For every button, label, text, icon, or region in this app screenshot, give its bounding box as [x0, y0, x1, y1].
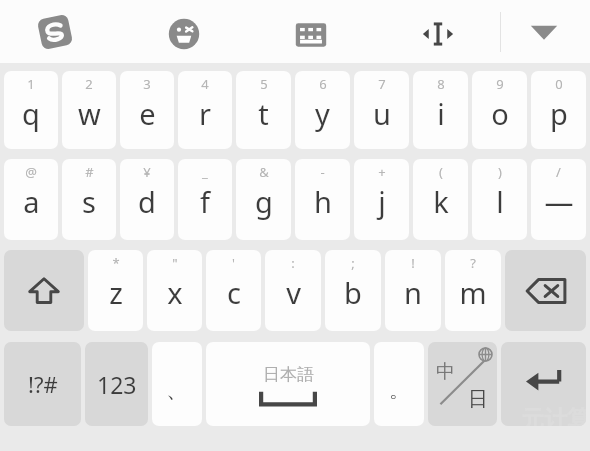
staticText: k	[433, 182, 449, 221]
button[interactable]: /	[531, 159, 586, 240]
button[interactable]: :	[265, 250, 321, 331]
staticText: m	[459, 273, 487, 312]
button[interactable]: Move cursor	[417, 13, 459, 55]
staticText: g	[255, 182, 273, 221]
staticText: 、	[166, 376, 188, 404]
staticText: h	[314, 182, 332, 221]
staticText: 7	[378, 75, 386, 93]
staticText: j	[378, 182, 386, 221]
button[interactable]: _	[178, 159, 232, 240]
staticText: /	[556, 163, 561, 181]
button[interactable]: ?	[445, 250, 501, 331]
staticText: !	[411, 254, 415, 272]
button[interactable]: 3	[120, 71, 174, 149]
button[interactable]: (	[413, 159, 468, 240]
button[interactable]: 4	[178, 71, 232, 149]
staticText: r	[199, 94, 211, 133]
button[interactable]: '	[206, 250, 261, 331]
staticText: c	[227, 273, 241, 312]
button[interactable]: !?#	[4, 342, 81, 426]
staticText: a	[23, 182, 40, 221]
staticText: :	[291, 254, 295, 272]
button[interactable]: 2	[62, 71, 116, 149]
staticText: *	[112, 254, 120, 272]
staticText: s	[82, 182, 96, 221]
staticText: y	[315, 94, 330, 133]
button[interactable]: +	[354, 159, 409, 240]
staticText: 123	[97, 369, 137, 400]
staticText: b	[344, 273, 362, 312]
staticText: l	[496, 182, 504, 221]
staticText: @	[25, 163, 37, 181]
staticText: x	[167, 273, 183, 312]
button[interactable]: #	[62, 159, 116, 240]
staticText: 6	[319, 75, 327, 93]
staticText: p	[550, 94, 568, 133]
staticText: 1	[27, 75, 35, 93]
staticText: i	[437, 94, 445, 133]
button[interactable]: -	[295, 159, 350, 240]
staticText: ?	[470, 254, 476, 272]
button[interactable]: 、	[152, 342, 202, 426]
staticText: n	[404, 273, 422, 312]
staticText: w	[78, 94, 101, 133]
button[interactable]: *	[88, 250, 143, 331]
staticText: 3	[143, 75, 151, 93]
staticText: #	[85, 163, 94, 181]
button[interactable]: &	[236, 159, 291, 240]
button[interactable]: Keyboard layout	[292, 16, 330, 54]
staticText: )	[498, 163, 502, 181]
button[interactable]: 5	[236, 71, 291, 149]
button[interactable]: Hide keyboard	[524, 18, 564, 46]
button[interactable]: 6	[295, 71, 350, 149]
staticText: 日	[468, 387, 488, 412]
staticText: e	[139, 94, 156, 133]
staticText: u	[373, 94, 391, 133]
button[interactable]: !	[385, 250, 441, 331]
staticText: -	[320, 163, 325, 181]
staticText: t	[258, 94, 269, 133]
staticText: _	[202, 163, 208, 181]
staticText: 8	[437, 75, 445, 93]
button[interactable]: 1	[4, 71, 58, 149]
button[interactable]: Emoji	[164, 14, 204, 54]
staticText: 。	[389, 378, 409, 403]
button[interactable]: Backspace	[505, 250, 586, 331]
staticText: ¥	[143, 163, 151, 181]
button[interactable]: 9	[472, 71, 527, 149]
staticText: 2	[85, 75, 93, 93]
staticText: 5	[260, 75, 268, 93]
staticText: d	[138, 182, 156, 221]
button[interactable]: 0	[531, 71, 586, 149]
button[interactable]: @	[4, 159, 58, 240]
button[interactable]: Shift	[4, 250, 84, 331]
button[interactable]: Switch language Chinese Japanese	[428, 342, 497, 426]
button[interactable]: Enter	[501, 342, 586, 426]
button[interactable]: Sogou input settings	[33, 10, 77, 54]
staticText: 4	[201, 75, 209, 93]
staticText: !?#	[28, 369, 58, 399]
staticText: 9	[496, 75, 504, 93]
staticText: "	[172, 254, 178, 272]
button[interactable]: 123	[85, 342, 148, 426]
button[interactable]: 。	[374, 342, 424, 426]
staticText: 日本語	[263, 364, 314, 385]
button[interactable]: Space	[206, 342, 370, 426]
button[interactable]: 7	[354, 71, 409, 149]
button[interactable]: 8	[413, 71, 468, 149]
button[interactable]: "	[147, 250, 202, 331]
staticText: +	[378, 163, 386, 181]
staticText: (	[439, 163, 443, 181]
button[interactable]: ;	[325, 250, 381, 331]
button[interactable]: )	[472, 159, 527, 240]
staticText: f	[200, 182, 210, 221]
staticText: 0	[555, 75, 563, 93]
button[interactable]: ¥	[120, 159, 174, 240]
staticText: o	[491, 94, 509, 133]
staticText: 中	[436, 360, 455, 384]
staticText: ;	[351, 254, 355, 272]
staticText: &	[259, 163, 269, 181]
staticText: z	[109, 273, 123, 312]
staticText: '	[232, 254, 235, 272]
staticText: v	[286, 273, 301, 312]
